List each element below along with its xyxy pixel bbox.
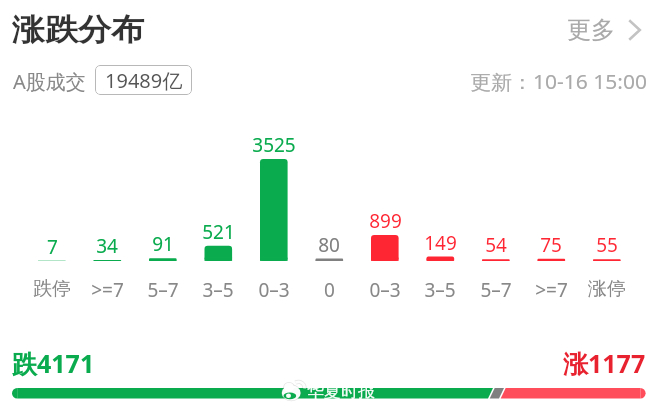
staticText: 521	[202, 219, 235, 245]
staticText: 3–5	[424, 277, 456, 303]
staticText: 149	[424, 230, 457, 256]
button[interactable]: 更多	[563, 13, 647, 47]
staticText: 3–5	[202, 277, 234, 303]
staticText: 91	[152, 231, 174, 257]
staticText: >=7	[91, 277, 124, 303]
staticText: 5–7	[147, 277, 179, 303]
staticText: 54	[485, 232, 507, 258]
staticText: 涨跌分布	[12, 11, 144, 49]
staticText: 0	[324, 277, 335, 303]
staticText: >=7	[535, 277, 568, 303]
staticText: 3525	[252, 132, 296, 158]
staticText: 更多	[567, 15, 615, 45]
staticText: 0–3	[258, 277, 290, 303]
staticText: 7	[47, 234, 58, 260]
other: Weibo watermark	[280, 381, 305, 401]
staticText: 19489亿	[105, 67, 183, 94]
staticText: 华夏时报	[307, 381, 375, 402]
button[interactable]: 19489亿	[95, 65, 192, 95]
staticText: 涨停	[588, 277, 626, 301]
staticText: 55	[596, 232, 618, 258]
staticText: 5–7	[480, 277, 512, 303]
staticText: A股成交	[13, 68, 86, 95]
staticText: 跌停	[33, 277, 71, 301]
button[interactable]: 跌4171	[12, 346, 95, 380]
staticText: 899	[369, 208, 402, 234]
staticText: 75	[540, 232, 562, 258]
staticText: 更新：10-16 15:00	[470, 69, 647, 96]
staticText: 34	[96, 233, 118, 259]
button[interactable]: 涨1177	[563, 346, 646, 380]
staticText: 80	[318, 232, 340, 258]
staticText: 0–3	[369, 277, 401, 303]
